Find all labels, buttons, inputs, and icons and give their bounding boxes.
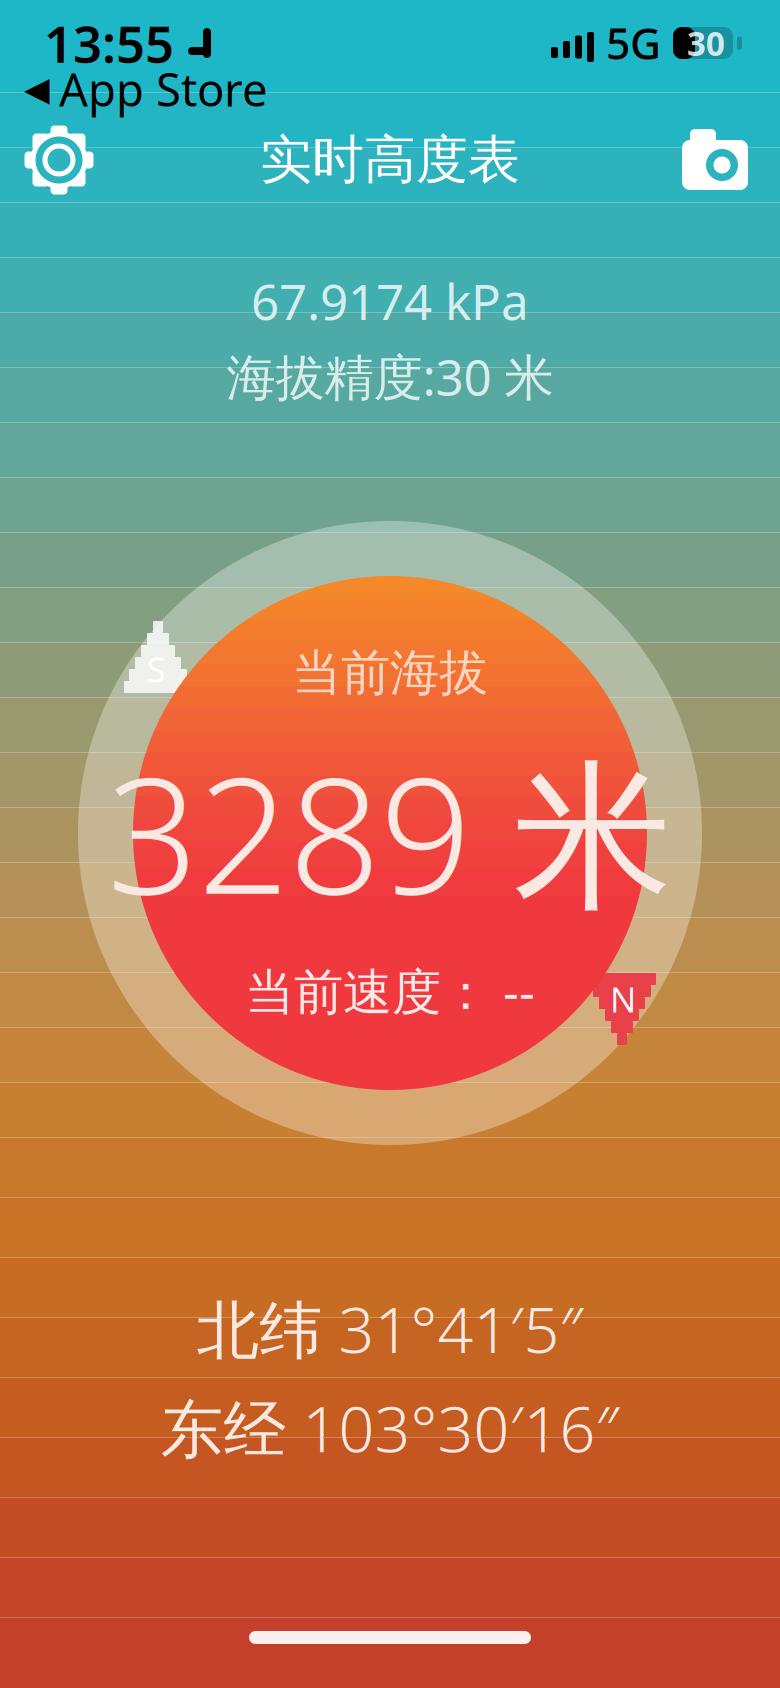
button[interactable]: 拍照 [674, 119, 756, 201]
button[interactable]: 设置 [18, 119, 100, 201]
staticText: 3289 米 [107, 725, 673, 938]
staticText: 30 [687, 21, 725, 65]
staticText: 东经 103°30′16″ [160, 1386, 619, 1469]
staticText: S [146, 646, 165, 692]
staticText: 当前速度： -- [245, 958, 535, 1023]
button[interactable]: ◀ [16, 55, 276, 123]
staticText: 北纬 31°41′5″ [196, 1287, 583, 1370]
staticText: 67.9174 kPa [251, 268, 529, 333]
staticText: 13:55 [44, 9, 174, 77]
staticText: 实时高度表 [260, 128, 520, 192]
staticText: App Store [59, 59, 268, 119]
staticText: ◀ [24, 70, 50, 108]
staticText: 当前海拔 [292, 643, 488, 703]
staticText: 5G [606, 15, 661, 71]
staticText: N [610, 976, 636, 1022]
staticText: 海拔精度:30 米 [226, 343, 553, 409]
